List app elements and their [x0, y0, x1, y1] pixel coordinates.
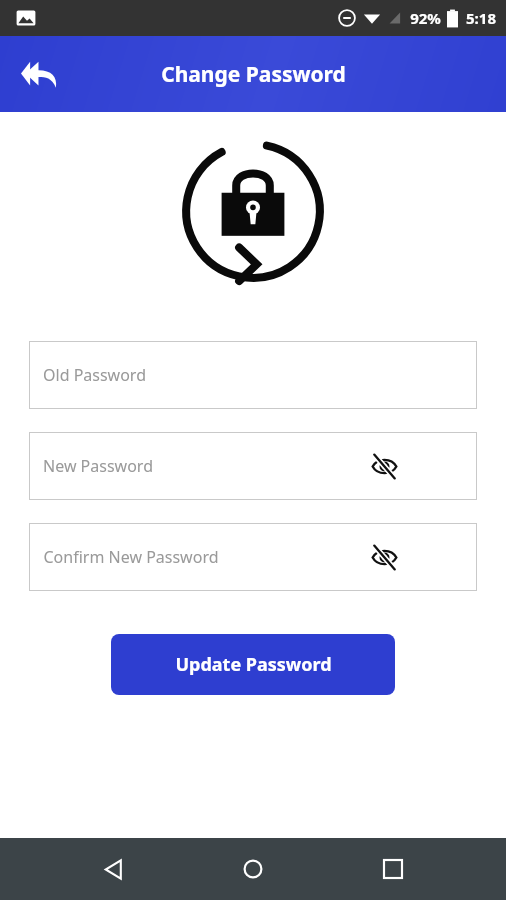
staticText: New Password — [43, 455, 153, 477]
staticText: 5:18 — [466, 8, 496, 28]
staticText: Old Password — [43, 364, 146, 386]
button[interactable]: Show password — [365, 447, 403, 485]
button[interactable]: Back — [88, 843, 140, 895]
button[interactable]: Confirm New Password — [29, 523, 477, 591]
button[interactable]: New Password — [29, 432, 477, 500]
button[interactable]: Home — [227, 843, 279, 895]
button[interactable]: Old Password — [29, 341, 477, 409]
button[interactable]: Show password — [365, 538, 403, 576]
staticText: Change Password — [161, 60, 346, 89]
staticText: 92% — [410, 8, 441, 28]
staticText: Update Password — [175, 652, 332, 677]
button[interactable]: Update Password — [111, 634, 395, 695]
button[interactable]: Back — [14, 48, 66, 100]
button[interactable]: Recent apps — [367, 843, 419, 895]
staticText: Confirm New Password — [43, 546, 219, 568]
